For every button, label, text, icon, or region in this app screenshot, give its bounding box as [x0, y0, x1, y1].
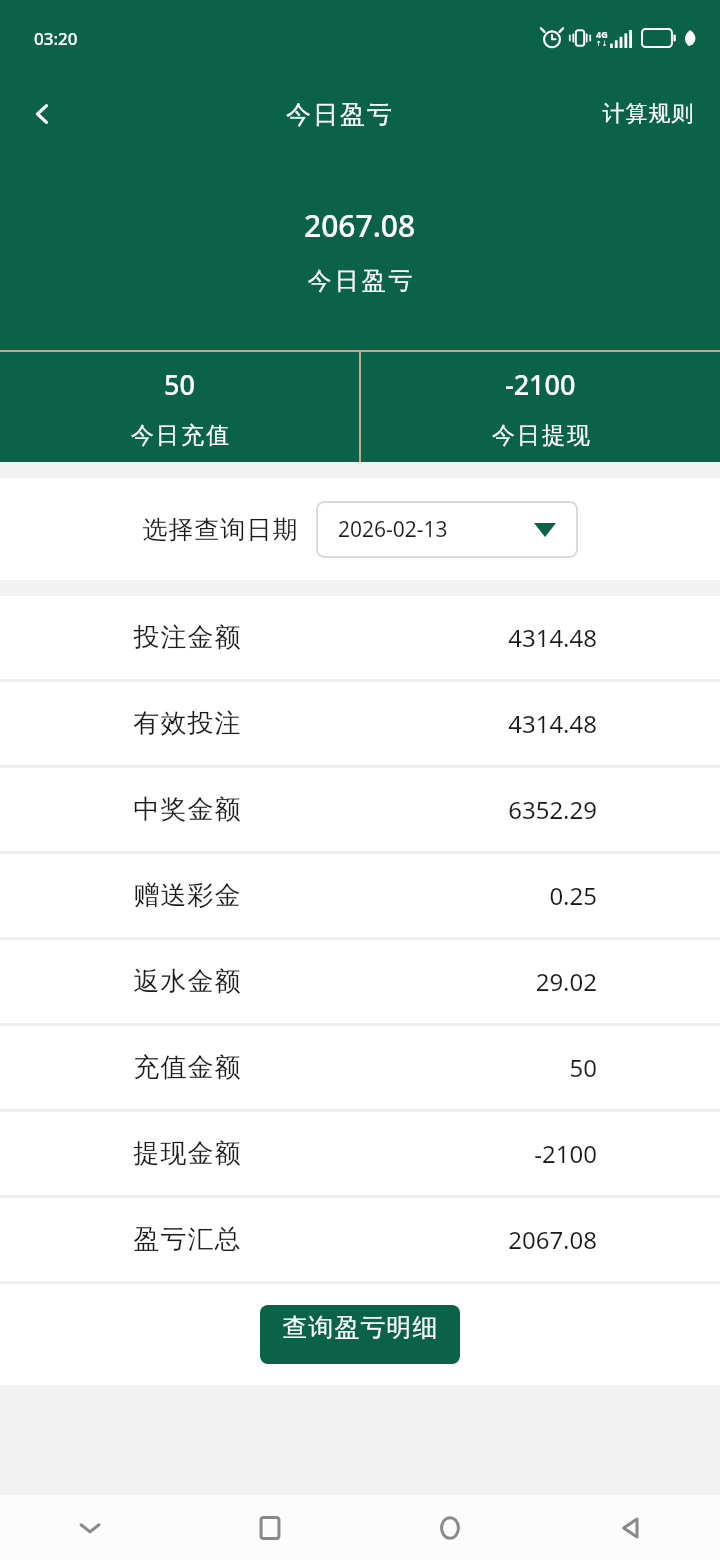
staticText: 中奖金额 — [133, 793, 241, 826]
staticText: 今日充值 — [130, 421, 230, 450]
button[interactable]: 充值金额 — [0, 1026, 720, 1109]
staticText: 4314.48 — [508, 621, 597, 654]
button[interactable]: -2100 — [361, 352, 720, 450]
staticText: -2100 — [505, 366, 576, 403]
staticText: 选择查询日期 — [142, 514, 298, 545]
staticText: 充值金额 — [133, 1051, 241, 1084]
staticText: 4G — [596, 28, 608, 40]
staticText: 盈亏汇总 — [133, 1223, 241, 1256]
staticText: 03:20 — [34, 27, 78, 50]
staticText: 2067.08 — [304, 205, 416, 246]
button[interactable]: 计算规则 — [594, 90, 702, 138]
button[interactable]: 赠送彩金 — [0, 854, 720, 937]
button[interactable]: 提现金额 — [0, 1112, 720, 1195]
staticText: 查询盈亏明细 — [282, 1312, 438, 1343]
staticText: 29.02 — [535, 965, 597, 998]
button[interactable]: 返水金额 — [0, 940, 720, 1023]
staticText: 提现金额 — [133, 1137, 241, 1170]
staticText: 投注金额 — [133, 621, 241, 654]
staticText: 50 — [164, 366, 195, 403]
button[interactable]: 盈亏汇总 — [0, 1198, 720, 1281]
staticText: 4314.48 — [508, 707, 597, 740]
button[interactable]: 有效投注 — [0, 682, 720, 765]
button[interactable]: 中奖金额 — [0, 768, 720, 851]
staticText: 赠送彩金 — [133, 879, 241, 912]
button[interactable]: Recents — [180, 1495, 360, 1560]
staticText: 0.25 — [549, 879, 597, 912]
button[interactable]: Back — [0, 76, 84, 152]
staticText: 有效投注 — [133, 707, 241, 740]
staticText: 今日盈亏 — [285, 99, 393, 130]
staticText: 返水金额 — [133, 965, 241, 998]
staticText: -2100 — [534, 1137, 597, 1170]
button[interactable]: 50 — [0, 352, 359, 450]
button[interactable]: Back — [540, 1495, 720, 1560]
staticText: ↑↓ — [596, 40, 608, 48]
button[interactable]: Home — [360, 1495, 540, 1560]
staticText: 2026-02-13 — [338, 515, 448, 544]
button[interactable]: 2026-02-13 — [316, 501, 578, 558]
staticText: 今日提现 — [491, 421, 591, 450]
staticText: 计算规则 — [602, 100, 694, 128]
button[interactable]: 投注金额 — [0, 596, 720, 679]
button[interactable]: Hide keyboard — [0, 1495, 180, 1560]
staticText: 6352.29 — [508, 793, 597, 826]
staticText: 今日盈亏 — [306, 266, 414, 296]
staticText: 2067.08 — [508, 1223, 597, 1256]
staticText: 50 — [569, 1051, 597, 1084]
button[interactable]: 查询盈亏明细 — [260, 1305, 460, 1364]
